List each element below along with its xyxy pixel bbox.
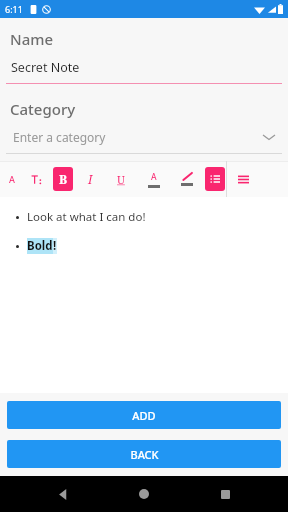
button[interactable]: Bold bbox=[50, 161, 75, 197]
button[interactable]: Enter a category bbox=[0, 129, 288, 145]
staticText: A bbox=[151, 171, 157, 183]
staticText: B bbox=[59, 171, 68, 187]
button[interactable]: Home bbox=[126, 476, 162, 512]
staticText: Bold bbox=[27, 238, 53, 254]
staticText: 6:11 bbox=[5, 3, 23, 15]
button[interactable]: Recents bbox=[207, 476, 243, 512]
staticText: U bbox=[117, 172, 125, 187]
staticText: Enter a category bbox=[13, 129, 106, 145]
button[interactable]: Font size small bbox=[0, 161, 23, 197]
staticText: ! bbox=[53, 238, 57, 254]
button[interactable]: BACK bbox=[7, 440, 281, 468]
staticText: A bbox=[9, 173, 15, 185]
staticText: Category bbox=[10, 99, 76, 119]
button[interactable]: Text colour bbox=[137, 161, 170, 197]
button[interactable]: Alignment bbox=[227, 161, 259, 197]
staticText: I bbox=[88, 171, 93, 187]
button[interactable]: Highlight colour bbox=[170, 161, 203, 197]
button[interactable]: Underline bbox=[105, 161, 137, 197]
button[interactable]: Bulleted list bbox=[203, 161, 226, 197]
staticText: ADD bbox=[132, 408, 156, 423]
staticText: BACK bbox=[130, 447, 159, 462]
button[interactable]: Italic bbox=[75, 161, 105, 197]
button[interactable]: Back bbox=[45, 476, 81, 512]
button[interactable]: Text size bbox=[23, 161, 50, 197]
staticText: Look at what I can do! bbox=[27, 209, 146, 225]
staticText: Secret Note bbox=[11, 59, 80, 76]
button[interactable]: ADD bbox=[7, 401, 281, 429]
staticText: Name bbox=[10, 29, 54, 49]
